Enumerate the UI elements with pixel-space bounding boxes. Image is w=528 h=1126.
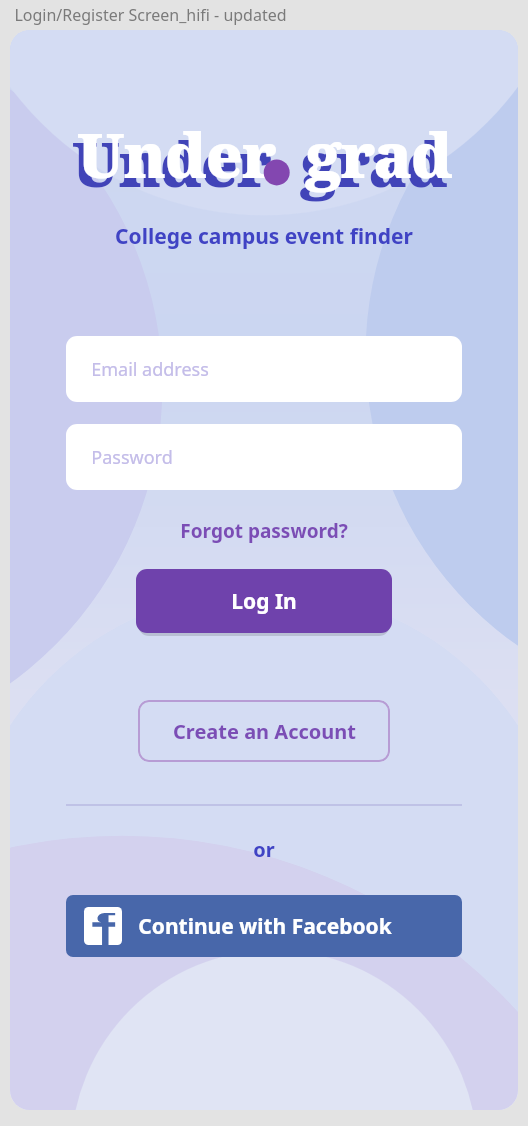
staticText: Under: [77, 112, 276, 196]
staticText: Email address: [91, 357, 209, 382]
staticText: or: [253, 836, 275, 863]
staticText: Log In: [231, 587, 297, 616]
staticText: Forgot password?: [180, 518, 348, 544]
button[interactable]: Password: [66, 424, 462, 490]
button[interactable]: Forgot password?: [172, 514, 356, 548]
button[interactable]: Continue with Facebook: [66, 895, 462, 957]
staticText: grad: [301, 121, 447, 205]
button[interactable]: Log In: [136, 569, 392, 633]
staticText: grad: [306, 112, 452, 196]
button[interactable]: Create an Account: [138, 700, 390, 762]
staticText: Continue with Facebook: [138, 912, 392, 941]
staticText: Under: [72, 121, 271, 205]
staticText: Create an Account: [173, 718, 356, 745]
staticText: Password: [91, 445, 173, 470]
staticText: Login/Register Screen_hifi - updated: [14, 4, 287, 26]
staticText: College campus event finder: [115, 222, 413, 251]
button[interactable]: Email address: [66, 336, 462, 402]
